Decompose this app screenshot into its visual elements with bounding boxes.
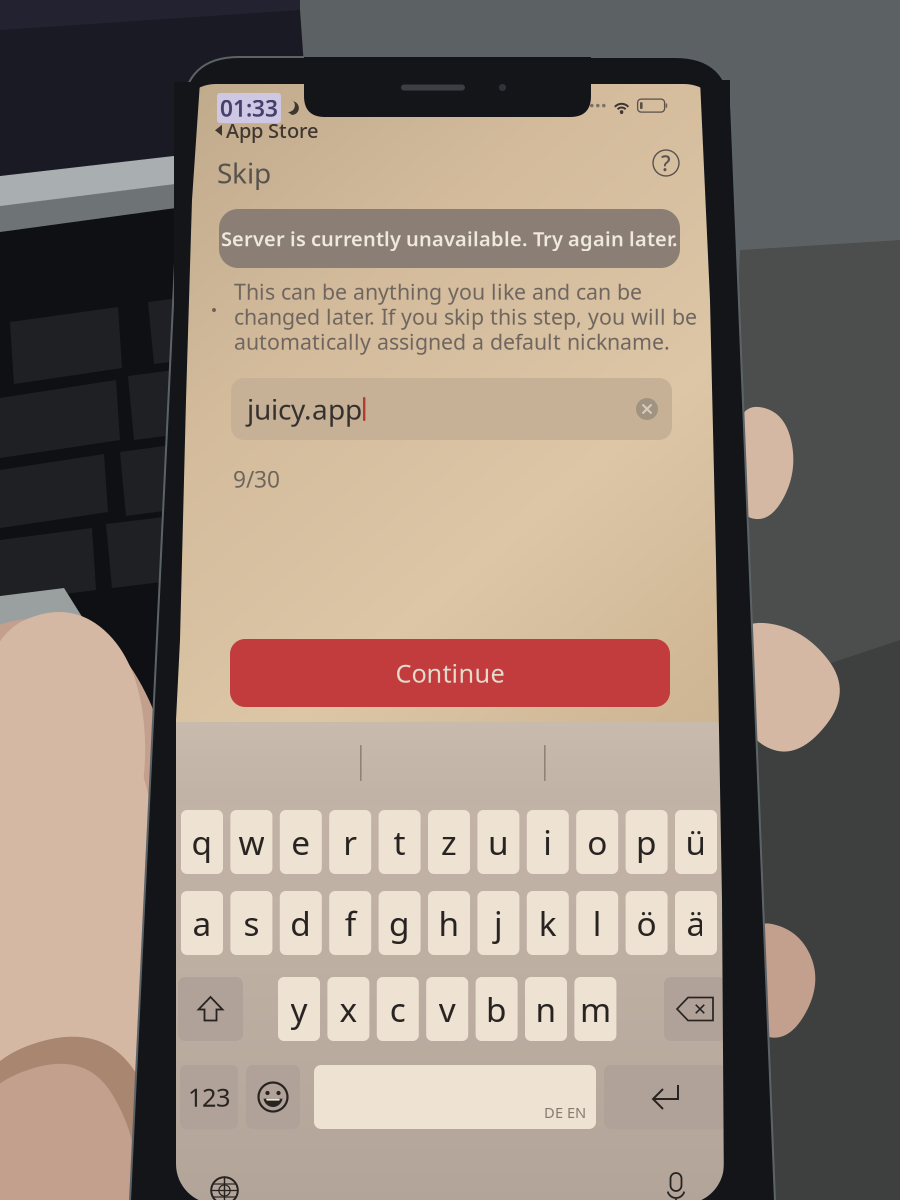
button[interactable]: z [428,810,470,874]
button[interactable]: Dictate [654,1162,698,1200]
staticText: b [486,987,507,1031]
button[interactable]: Return [604,1065,727,1129]
staticText: r [343,820,357,864]
staticText: f [345,901,356,945]
staticText: s [243,901,259,945]
button[interactable]: c [377,977,419,1041]
button[interactable]: Back to App Store [215,114,318,147]
button[interactable]: j [477,891,519,955]
staticText: v [439,987,456,1031]
button[interactable]: t [379,810,421,874]
staticText: m [580,987,611,1031]
button[interactable]: r [329,810,371,874]
button[interactable]: ü [675,810,717,874]
button[interactable]: Help [646,143,686,183]
button[interactable]: v [426,977,468,1041]
button[interactable]: e [280,810,322,874]
button[interactable]: 123 [180,1065,238,1129]
staticText: j [494,901,503,945]
staticText: z [441,820,457,864]
button[interactable]: u [477,810,519,874]
staticText: ä [686,901,705,945]
staticText: 9/30 [233,464,280,494]
staticText: a [192,901,211,945]
staticText: q [191,820,212,864]
staticText: DE EN [544,1102,586,1122]
staticText: automatically assigned a default nicknam… [234,327,670,356]
button[interactable]: Clear text [632,394,662,424]
staticText: i [543,820,552,864]
staticText: Skip [217,154,271,191]
staticText: c [390,987,406,1031]
button[interactable]: s [230,891,272,955]
staticText: p [636,820,657,864]
button[interactable]: g [379,891,421,955]
staticText: x [339,987,357,1031]
button[interactable]: Shift [178,977,243,1041]
button[interactable]: ä [675,891,717,955]
staticText: n [535,987,556,1031]
staticText: App Store [226,117,318,144]
staticText: d [290,901,311,945]
button[interactable]: h [428,891,470,955]
button[interactable]: Space [314,1065,596,1129]
staticText: k [539,901,557,945]
staticText: juicy.app [247,390,362,428]
staticText: ü [685,820,706,864]
button[interactable]: o [576,810,618,874]
staticText: 01:33 [220,93,278,123]
staticText: y [290,987,307,1031]
button[interactable]: x [327,977,369,1041]
button[interactable]: n [525,977,567,1041]
button[interactable]: Delete [664,977,726,1041]
button[interactable]: Skip [205,146,283,199]
button[interactable]: Continue [230,639,670,707]
staticText: e [291,820,310,864]
staticText: h [438,901,459,945]
staticText: o [587,820,607,864]
staticText: t [394,820,406,864]
button[interactable]: p [626,810,668,874]
staticText: l [593,901,602,945]
button[interactable]: f [329,891,371,955]
staticText: ö [637,901,657,945]
button[interactable]: y [278,977,320,1041]
staticText: 123 [188,1080,230,1114]
button[interactable]: Switch keyboard [201,1167,248,1200]
button[interactable]: ö [626,891,668,955]
staticText: u [488,820,509,864]
staticText: ? [661,149,671,177]
button[interactable]: k [527,891,569,955]
button[interactable]: b [476,977,518,1041]
button[interactable]: m [574,977,616,1041]
button[interactable]: w [230,810,272,874]
staticText: w [238,820,264,864]
staticText: This can be anything you like and can be [234,277,642,306]
button[interactable]: a [181,891,223,955]
button[interactable]: Emoji [246,1065,300,1129]
staticText: Continue [395,656,504,690]
button[interactable]: q [181,810,223,874]
button[interactable]: d [280,891,322,955]
staticText: Server is currently unavailable. Try aga… [221,225,678,252]
staticText: changed later. If you skip this step, yo… [234,302,697,331]
staticText: g [389,901,410,945]
button[interactable]: i [527,810,569,874]
button[interactable]: l [576,891,618,955]
